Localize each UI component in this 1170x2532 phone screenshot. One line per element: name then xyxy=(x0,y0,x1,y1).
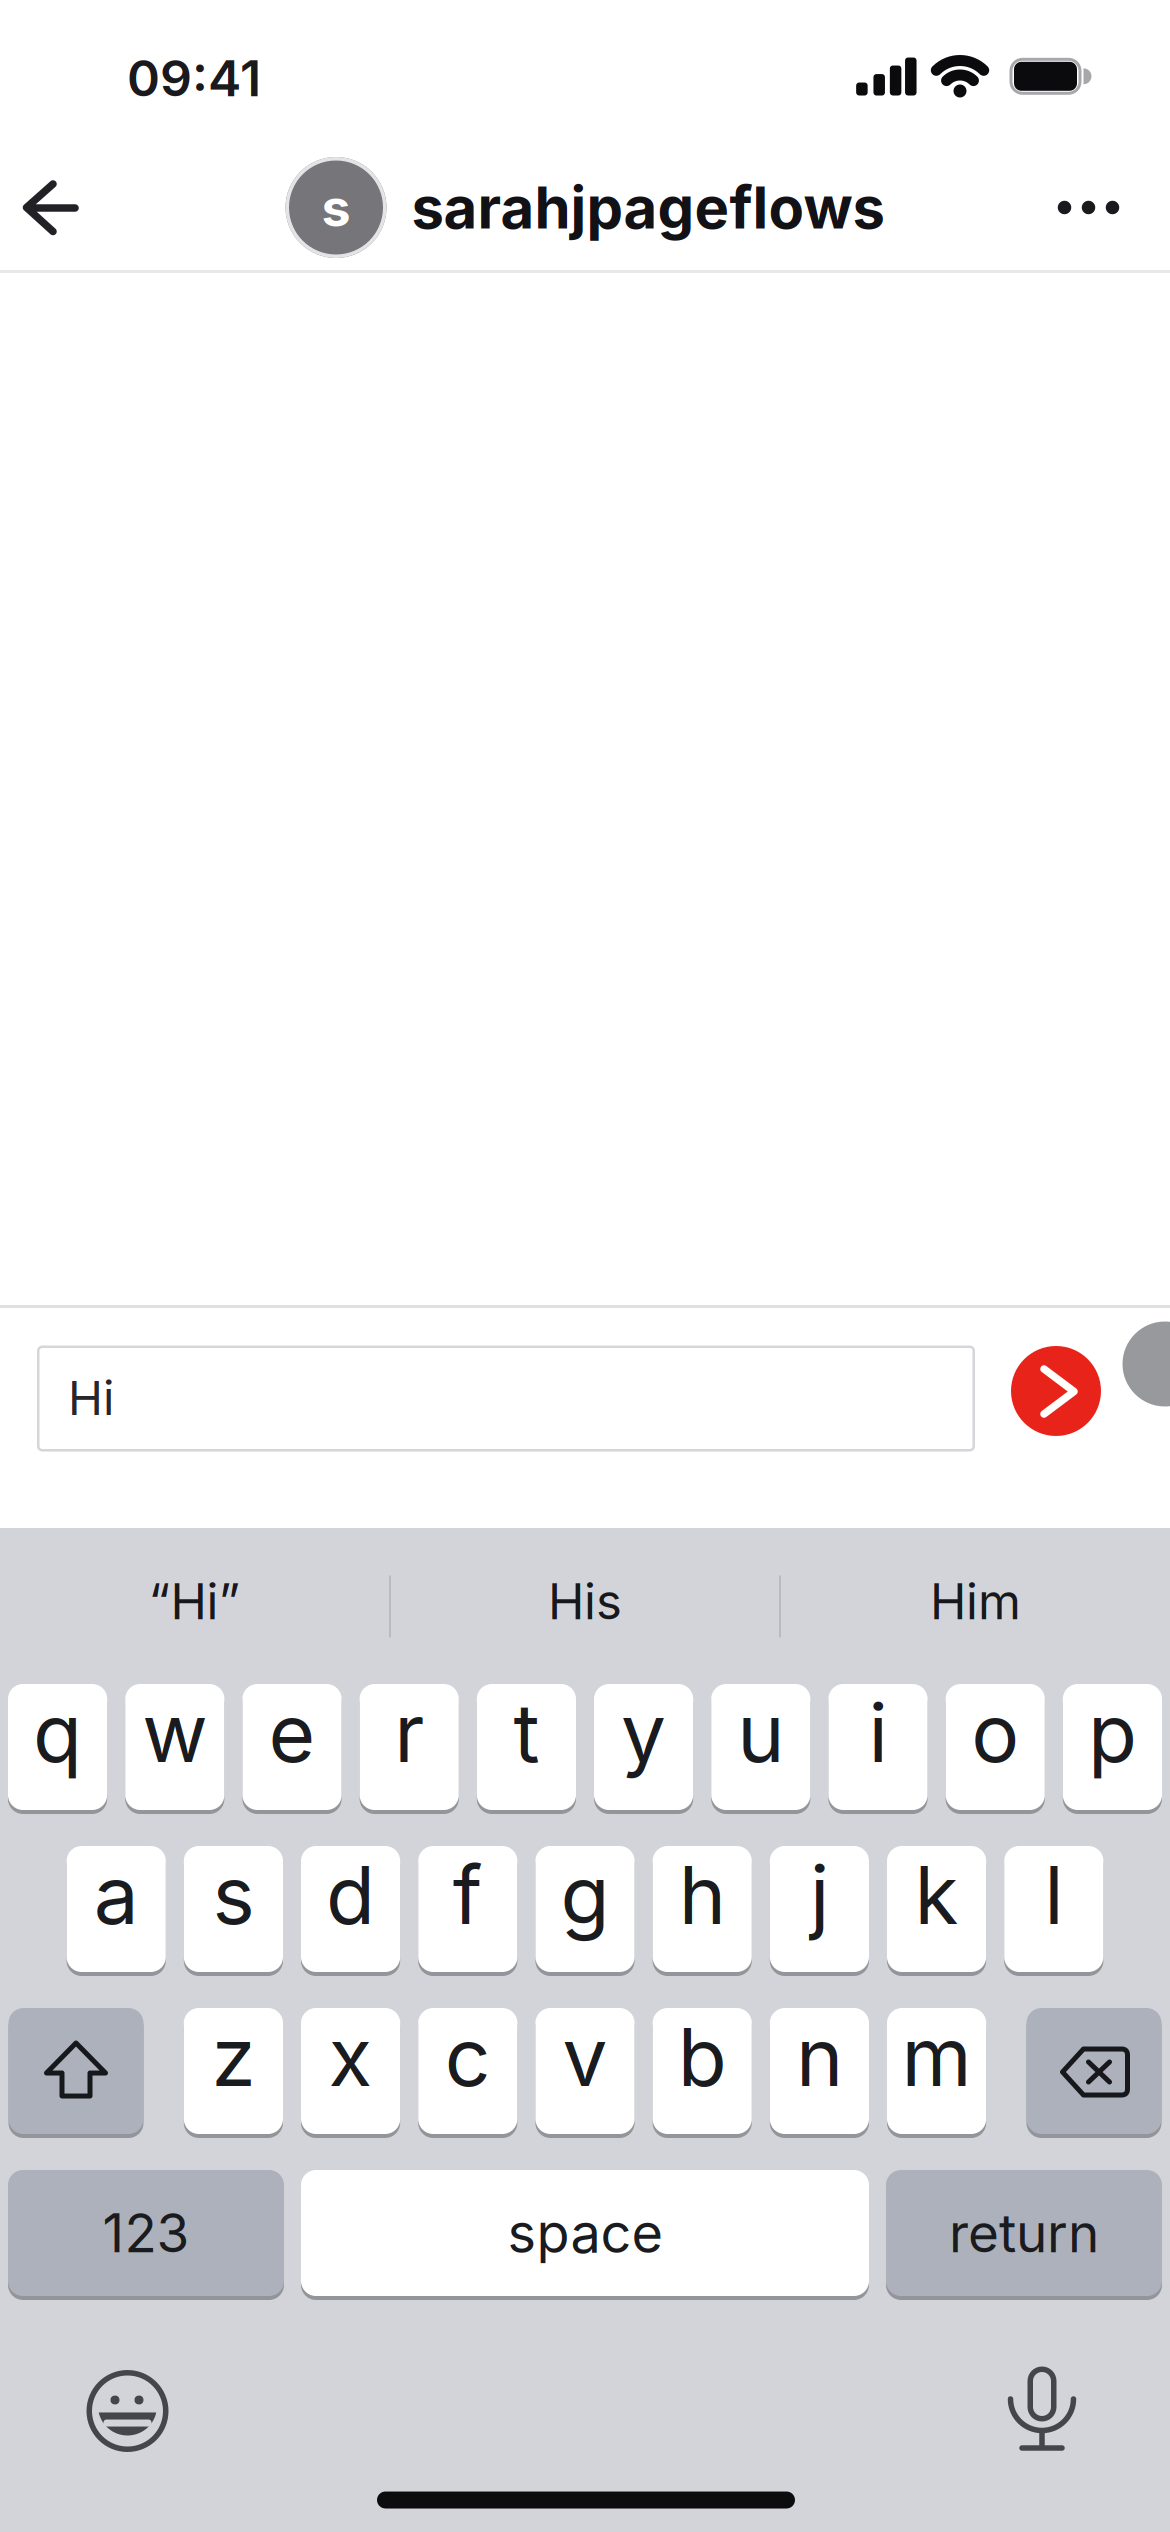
staticText: sarahjpageflows xyxy=(411,172,884,243)
staticText: return xyxy=(949,2201,1099,2265)
staticText: n xyxy=(796,2009,843,2105)
button[interactable]: x xyxy=(301,2009,400,2135)
button[interactable]: p xyxy=(1063,1685,1162,1811)
staticText: space xyxy=(507,2200,662,2266)
button[interactable]: i xyxy=(828,1685,928,1811)
button[interactable]: g xyxy=(535,1847,635,1973)
staticText: c xyxy=(445,2009,491,2105)
button[interactable]: t xyxy=(477,1685,576,1811)
staticText: p xyxy=(1088,1685,1137,1781)
staticText: Him xyxy=(930,1572,1021,1631)
staticText: s xyxy=(212,1847,254,1943)
staticText: x xyxy=(329,2009,373,2105)
staticText: s xyxy=(321,176,350,239)
button[interactable] xyxy=(1026,2009,1161,2135)
staticText: l xyxy=(1044,1847,1063,1943)
button[interactable]: q xyxy=(8,1685,107,1811)
button[interactable]: n xyxy=(770,2009,869,2135)
staticText: o xyxy=(971,1685,1019,1781)
staticText: r xyxy=(394,1685,424,1781)
button[interactable]: s xyxy=(184,1847,283,1973)
staticText: h xyxy=(679,1847,726,1943)
staticText: g xyxy=(560,1847,609,1943)
staticText: b xyxy=(678,2009,727,2105)
button[interactable]: w xyxy=(125,1685,224,1811)
button[interactable]: c xyxy=(418,2009,517,2135)
button[interactable]: o xyxy=(946,1685,1045,1811)
button[interactable]: m xyxy=(887,2009,986,2135)
button[interactable]: return xyxy=(886,2171,1162,2297)
staticText: w xyxy=(142,1685,207,1781)
staticText: d xyxy=(326,1847,375,1943)
button[interactable]: u xyxy=(711,1685,810,1811)
staticText: j xyxy=(810,1847,829,1943)
button[interactable]: j xyxy=(770,1847,869,1973)
button[interactable]: Him xyxy=(781,1528,1170,1685)
staticText: 123 xyxy=(102,2201,189,2265)
button[interactable]: l xyxy=(1004,1847,1103,1973)
button[interactable]: s xyxy=(285,157,884,258)
staticText: e xyxy=(268,1685,315,1781)
staticText: “Hi” xyxy=(148,1572,240,1631)
staticText: z xyxy=(211,2009,255,2105)
button[interactable] xyxy=(0,0,1170,2532)
staticText: 09:41 xyxy=(127,48,261,108)
button[interactable]: y xyxy=(594,1685,693,1811)
button[interactable]: His xyxy=(391,1528,779,1685)
button[interactable]: 123 xyxy=(8,2171,284,2297)
staticText: m xyxy=(902,2009,972,2105)
staticText: v xyxy=(562,2009,607,2105)
staticText: a xyxy=(94,1847,139,1943)
button[interactable]: b xyxy=(653,2009,752,2135)
staticText: f xyxy=(453,1847,483,1943)
button[interactable] xyxy=(8,2009,143,2135)
staticText: k xyxy=(915,1847,959,1943)
staticText: Hi xyxy=(68,1370,114,1426)
button[interactable]: r xyxy=(360,1685,459,1811)
staticText: His xyxy=(548,1572,622,1631)
staticText: t xyxy=(513,1685,539,1781)
staticText: q xyxy=(33,1685,82,1781)
button[interactable]: v xyxy=(535,2009,635,2135)
staticText: i xyxy=(868,1685,887,1781)
button[interactable]: space xyxy=(301,2171,869,2297)
button[interactable]: e xyxy=(242,1685,342,1811)
button[interactable] xyxy=(1058,201,1119,214)
button[interactable]: f xyxy=(418,1847,517,1973)
button[interactable] xyxy=(1011,1346,1101,1436)
button[interactable]: a xyxy=(67,1847,166,1973)
button[interactable]: k xyxy=(887,1847,986,1973)
button[interactable] xyxy=(1122,1321,1170,1406)
button[interactable]: h xyxy=(653,1847,752,1973)
button[interactable] xyxy=(0,0,1170,2532)
button[interactable]: z xyxy=(184,2009,283,2135)
staticText: y xyxy=(621,1685,666,1781)
staticText: u xyxy=(737,1685,784,1781)
button[interactable]: d xyxy=(301,1847,400,1973)
button[interactable] xyxy=(0,0,1170,2532)
button[interactable]: “Hi” xyxy=(0,1528,389,1685)
